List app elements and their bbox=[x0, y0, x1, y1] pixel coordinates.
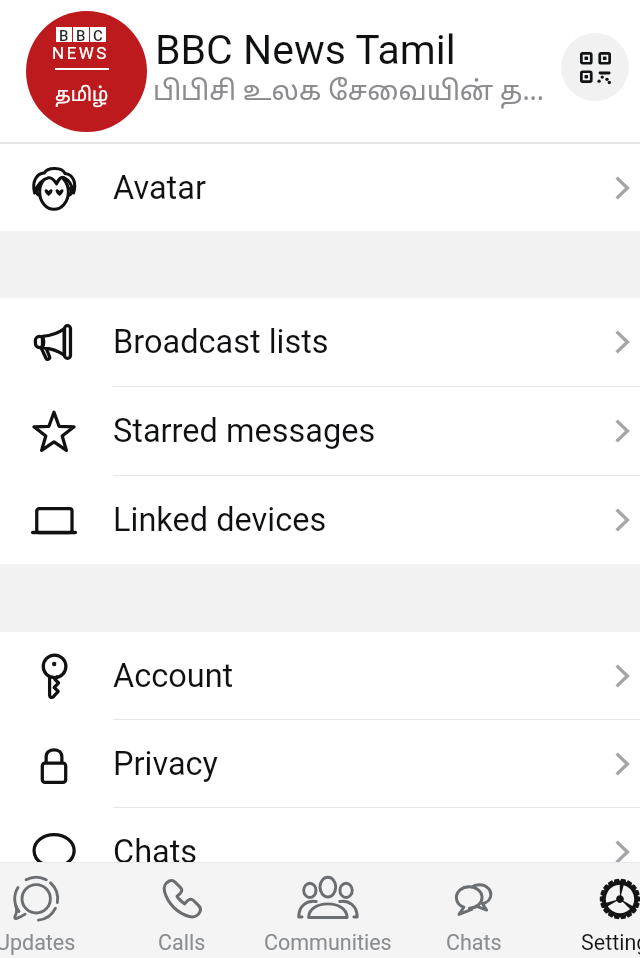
button[interactable]: Communities bbox=[255, 862, 401, 958]
staticText: Chats bbox=[113, 833, 620, 871]
button[interactable]: Starred messages bbox=[0, 387, 640, 475]
button[interactable]: Privacy bbox=[0, 720, 640, 807]
staticText: பிபிசி உலக சேவையின் த... bbox=[153, 77, 545, 110]
staticText: Account bbox=[113, 657, 620, 695]
button[interactable]: Linked devices bbox=[0, 476, 640, 564]
button[interactable]: Avatar bbox=[0, 144, 640, 231]
button[interactable]: Account bbox=[0, 632, 640, 719]
staticText: C bbox=[93, 27, 103, 42]
button[interactable]: Settings bbox=[547, 862, 640, 958]
button[interactable]: Updates bbox=[0, 862, 109, 958]
button[interactable]: Calls bbox=[109, 862, 255, 958]
button[interactable]: Broadcast lists bbox=[0, 298, 640, 386]
staticText: தமிழ் bbox=[55, 84, 109, 108]
staticText: Updates bbox=[0, 930, 76, 955]
staticText: Avatar bbox=[113, 169, 620, 207]
staticText: NEWS bbox=[52, 43, 109, 63]
staticText: Chats bbox=[446, 930, 502, 955]
staticText: B bbox=[76, 27, 86, 42]
staticText: Linked devices bbox=[113, 501, 620, 539]
staticText: Communities bbox=[264, 930, 392, 955]
staticText: Starred messages bbox=[113, 412, 620, 450]
staticText: Broadcast lists bbox=[113, 323, 620, 361]
staticText: BBC News Tamil bbox=[155, 26, 456, 74]
staticText: Privacy bbox=[113, 745, 620, 783]
button[interactable]: Chats bbox=[0, 808, 640, 895]
button[interactable]: Chats bbox=[401, 862, 547, 958]
button[interactable]: QR code bbox=[561, 33, 629, 101]
staticText: B bbox=[59, 27, 69, 42]
button[interactable]: Profile photo bbox=[26, 11, 147, 132]
staticText: Calls bbox=[158, 930, 206, 955]
staticText: Settings bbox=[581, 930, 640, 955]
